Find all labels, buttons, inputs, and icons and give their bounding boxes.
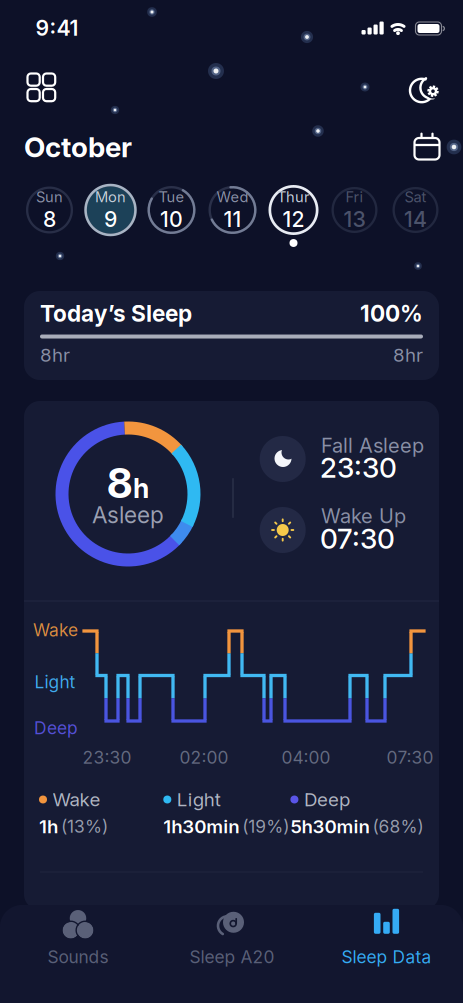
- staticText: 11: [223, 207, 241, 232]
- staticText: 23:30: [320, 451, 397, 484]
- staticText: 13: [343, 207, 365, 232]
- staticText: 02:00: [179, 747, 228, 768]
- staticText: Sleep Data: [341, 947, 431, 967]
- staticText: 10: [160, 207, 183, 232]
- staticText: Sat: [404, 188, 426, 206]
- staticText: Mon: [95, 188, 126, 206]
- staticText: Thur: [277, 188, 310, 206]
- button[interactable]: Wed: [205, 183, 259, 237]
- staticText: Light: [34, 672, 75, 692]
- button[interactable]: Menu: [26, 72, 57, 103]
- staticText: Fall Asleep: [321, 434, 424, 457]
- staticText: Fri: [345, 188, 363, 206]
- staticText: Deep: [304, 788, 350, 810]
- staticText: October: [24, 130, 132, 163]
- staticText: (19%): [242, 816, 289, 837]
- button[interactable]: Sleep settings: [404, 70, 448, 110]
- staticText: Light: [177, 788, 221, 810]
- staticText: 5h30min: [290, 815, 369, 837]
- button[interactable]: Sounds: [18, 905, 138, 971]
- button[interactable]: Thur: [266, 183, 320, 237]
- button[interactable]: Sleep A20: [172, 905, 292, 971]
- staticText: Deep: [34, 718, 78, 738]
- staticText: 07:30: [320, 522, 395, 555]
- staticText: 23:30: [82, 747, 131, 768]
- staticText: 9: [104, 207, 117, 232]
- staticText: Tue: [158, 188, 184, 206]
- button[interactable]: Tue: [144, 183, 198, 237]
- staticText: 9:41: [35, 15, 78, 41]
- staticText: Wake: [52, 788, 100, 810]
- staticText: 8: [107, 459, 132, 507]
- staticText: 8hr: [393, 344, 423, 366]
- staticText: 12: [282, 207, 304, 232]
- staticText: 8: [43, 207, 56, 232]
- staticText: Wake: [33, 620, 78, 640]
- staticText: 8hr: [40, 344, 70, 366]
- button[interactable]: Sat: [388, 183, 442, 237]
- button[interactable]: Sleep Data: [326, 905, 446, 971]
- staticText: 14: [404, 207, 427, 232]
- staticText: Sounds: [47, 947, 108, 967]
- button[interactable]: Sun: [22, 183, 76, 237]
- staticText: Today’s Sleep: [40, 300, 192, 327]
- staticText: Asleep: [92, 502, 164, 528]
- staticText: 100%: [360, 300, 423, 327]
- staticText: Wake Up: [321, 504, 406, 528]
- staticText: h: [133, 473, 149, 504]
- staticText: 1h30min: [163, 815, 239, 837]
- button[interactable]: Calendar: [413, 132, 441, 161]
- staticText: 1h: [39, 815, 58, 837]
- staticText: (13%): [61, 816, 108, 837]
- staticText: (68%): [372, 816, 423, 837]
- button[interactable]: Mon: [83, 183, 137, 237]
- staticText: Wed: [216, 188, 248, 206]
- staticText: 04:00: [281, 747, 330, 768]
- staticText: Sun: [36, 188, 63, 206]
- button[interactable]: Fri: [327, 183, 381, 237]
- staticText: Sleep A20: [189, 947, 274, 967]
- staticText: 07:30: [386, 747, 433, 768]
